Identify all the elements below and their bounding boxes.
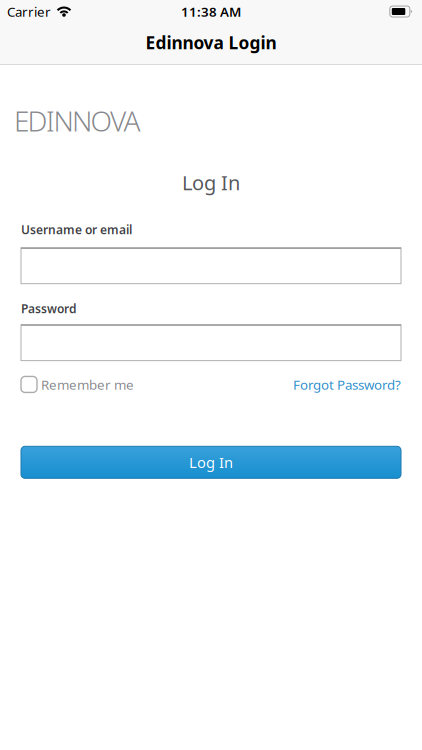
staticText: Remember me [41,376,134,393]
staticText: Log In [182,169,240,196]
staticText: Password [21,301,77,317]
button[interactable]: Password [21,325,401,361]
button[interactable]: Username or email [21,248,401,284]
button[interactable]: Remember me [21,376,134,393]
staticText: Forgot Password? [293,376,401,393]
staticText: 11:38 AM [181,3,241,20]
staticText: Username or email [21,222,132,238]
staticText: Edinnova Login [145,31,276,54]
staticText: Log In [189,453,233,472]
staticText: Carrier [7,3,51,20]
button[interactable]: Log In [21,446,401,478]
staticText: EDINNOVA [14,102,140,139]
button[interactable]: Forgot Password? [293,376,401,393]
